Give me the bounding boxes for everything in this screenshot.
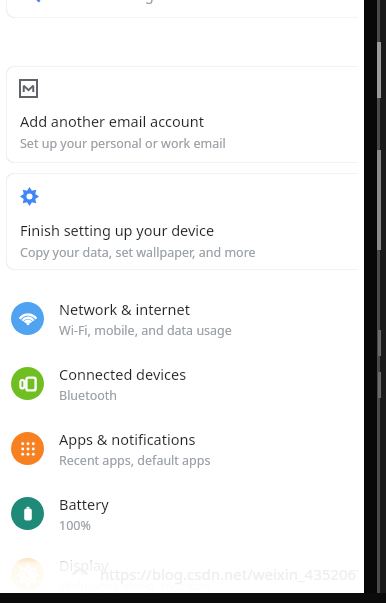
button[interactable]: Network & internet (0, 286, 386, 351)
staticText: 100% (59, 517, 91, 534)
staticText: Connected devices (59, 364, 187, 384)
staticText: Recent apps, default apps (59, 452, 211, 469)
staticText: Wallpaper, sleep, font size (59, 578, 211, 595)
staticText: Wi-Fi, mobile, and data usage (59, 322, 232, 339)
staticText: Set up your personal or work email (20, 135, 226, 152)
other: Gmail (20, 80, 37, 97)
button[interactable]: Apps & notifications (0, 416, 386, 481)
staticText: Bluetooth (59, 387, 118, 404)
staticText: Search settings (60, 0, 161, 4)
staticText: Finish setting up your device (20, 220, 215, 240)
button[interactable]: Connected devices (0, 351, 386, 416)
staticText: Add another email account (20, 111, 204, 131)
button[interactable]: Setup (6, 173, 384, 270)
button[interactable]: Gmail (6, 66, 384, 163)
staticText: Network & internet (59, 299, 190, 319)
staticText: https://blog.csdn.net/weixin_43520670 (100, 564, 374, 584)
staticText: Battery (59, 494, 109, 514)
other: Setup (20, 187, 39, 206)
button[interactable]: Search settings (6, 0, 384, 18)
button[interactable]: Display (0, 546, 386, 603)
staticText: Apps & notifications (59, 429, 196, 449)
staticText: Display (59, 555, 109, 575)
button[interactable]: Battery (0, 481, 386, 546)
staticText: Copy your data, set wallpaper, and more (20, 244, 256, 261)
